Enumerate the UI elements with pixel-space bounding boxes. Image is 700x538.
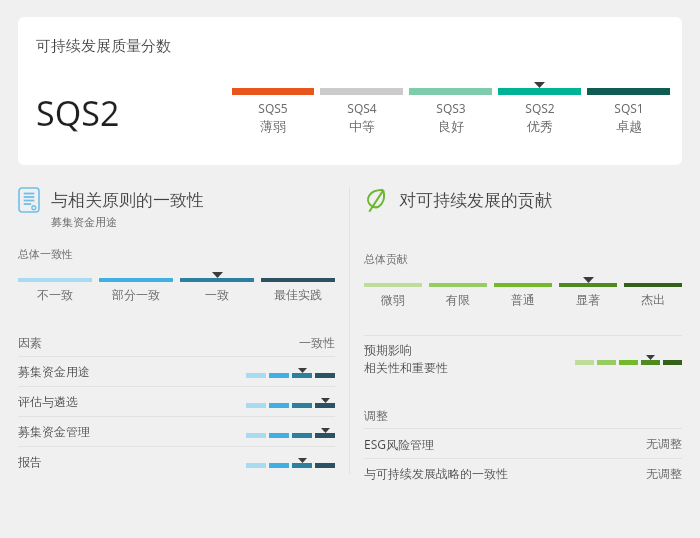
button[interactable]: SQS2 bbox=[498, 78, 581, 134]
staticText: SQS4 bbox=[347, 100, 377, 116]
button[interactable]: 募集资金管理 bbox=[18, 417, 335, 446]
button[interactable]: 不一致 bbox=[18, 268, 92, 302]
staticText: 显著 bbox=[576, 292, 600, 307]
staticText: 一致 bbox=[205, 287, 229, 302]
staticText: 普通 bbox=[511, 292, 535, 307]
button[interactable]: 有限 bbox=[429, 273, 487, 307]
staticText: 可持续发展质量分数 bbox=[36, 37, 171, 56]
staticText: 有限 bbox=[446, 292, 470, 307]
button[interactable]: ESG风险管理 bbox=[364, 429, 682, 458]
button[interactable]: SQS3 bbox=[409, 78, 492, 134]
staticText: 无调整 bbox=[646, 436, 682, 451]
staticText: 与相关原则的一致性 bbox=[51, 190, 204, 211]
staticText: SQS1 bbox=[614, 100, 644, 116]
staticText: SQS2 bbox=[525, 100, 555, 116]
button[interactable]: 微弱 bbox=[364, 273, 422, 307]
staticText: 最佳实践 bbox=[274, 287, 322, 302]
button[interactable]: 报告 bbox=[18, 447, 335, 476]
staticText: 薄弱 bbox=[260, 118, 286, 134]
staticText: 总体一致性 bbox=[18, 247, 73, 261]
staticText: 优秀 bbox=[527, 118, 553, 134]
staticText: 一致性 bbox=[299, 335, 335, 350]
other: 文件 bbox=[18, 187, 40, 213]
other: 叶子 bbox=[364, 187, 388, 213]
button[interactable]: 普通 bbox=[494, 273, 552, 307]
staticText: 预期影响 bbox=[364, 342, 412, 357]
staticText: 相关性和重要性 bbox=[364, 360, 448, 375]
button[interactable]: 杰出 bbox=[624, 273, 682, 307]
button[interactable]: SQS5 bbox=[232, 78, 314, 134]
button[interactable]: 与可持续发展战略的一致性 bbox=[364, 459, 682, 488]
button[interactable]: 可持续发展质量分数 bbox=[18, 17, 682, 165]
staticText: 募集资金用途 bbox=[51, 215, 117, 229]
staticText: 良好 bbox=[438, 118, 464, 134]
button[interactable]: 评估与遴选 bbox=[18, 387, 335, 416]
staticText: 微弱 bbox=[381, 292, 405, 307]
staticText: 不一致 bbox=[37, 287, 73, 302]
button[interactable]: 募集资金用途 bbox=[18, 357, 335, 386]
staticText: 与可持续发展战略的一致性 bbox=[364, 466, 646, 481]
staticText: 部分一致 bbox=[112, 287, 160, 302]
staticText: 杰出 bbox=[641, 292, 665, 307]
staticText: 卓越 bbox=[616, 118, 642, 134]
staticText: ESG风险管理 bbox=[364, 436, 646, 452]
staticText: 总体贡献 bbox=[364, 252, 408, 266]
staticText: 调整 bbox=[364, 408, 682, 423]
staticText: 无调整 bbox=[646, 466, 682, 481]
staticText: SQS3 bbox=[436, 100, 466, 116]
button[interactable]: SQS1 bbox=[587, 78, 670, 134]
staticText: 评估与遴选 bbox=[18, 394, 246, 409]
staticText: 对可持续发展的贡献 bbox=[399, 190, 552, 211]
staticText: 中等 bbox=[349, 118, 375, 134]
button[interactable]: 文件 bbox=[18, 187, 204, 213]
button[interactable]: 叶子 bbox=[364, 187, 552, 213]
button[interactable]: 部分一致 bbox=[99, 268, 173, 302]
staticText: SQS5 bbox=[258, 100, 288, 116]
button[interactable]: 显著 bbox=[559, 273, 617, 307]
staticText: 因素 bbox=[18, 335, 299, 350]
button[interactable]: 预期影响 bbox=[364, 336, 682, 380]
staticText: 报告 bbox=[18, 454, 246, 469]
button[interactable]: 一致 bbox=[180, 268, 254, 302]
staticText: SQS2 bbox=[36, 90, 120, 136]
button[interactable]: SQS4 bbox=[320, 78, 403, 134]
button[interactable]: 最佳实践 bbox=[261, 268, 335, 302]
staticText: 募集资金管理 bbox=[18, 424, 246, 439]
staticText: 募集资金用途 bbox=[18, 364, 246, 379]
